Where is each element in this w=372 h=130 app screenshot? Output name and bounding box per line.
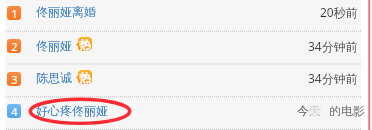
button[interactable]: 佟丽娅	[36, 38, 72, 53]
staticText: 佟丽娅离婚	[36, 4, 96, 19]
button[interactable]: 陈思诚	[36, 70, 72, 85]
staticText: 34分钟前	[308, 38, 358, 54]
button[interactable]: 1	[7, 6, 21, 20]
staticText: 3	[11, 72, 18, 86]
button[interactable]: 4	[7, 104, 21, 118]
staticText: 热	[79, 70, 91, 84]
other: 热门	[76, 37, 92, 51]
button[interactable]: 3	[7, 72, 21, 86]
button[interactable]: 佟丽娅离婚	[36, 4, 96, 19]
staticText: 1	[11, 6, 18, 20]
staticText: 的电影	[329, 103, 365, 118]
staticText: 20秒前	[320, 4, 358, 20]
other: 热门	[76, 70, 92, 84]
button[interactable]: 好心疼佟丽娅	[36, 103, 108, 118]
staticText: 佟丽娅	[36, 38, 72, 53]
staticText: 热	[79, 37, 91, 51]
staticText: 2	[11, 39, 18, 53]
staticText: 今天	[297, 103, 321, 118]
staticText: 好心疼佟丽娅	[36, 103, 108, 118]
staticText: 陈思诚	[36, 70, 72, 85]
staticText: 34分钟前	[308, 70, 358, 86]
staticText: 4	[11, 104, 18, 118]
button[interactable]: 2	[7, 39, 21, 53]
